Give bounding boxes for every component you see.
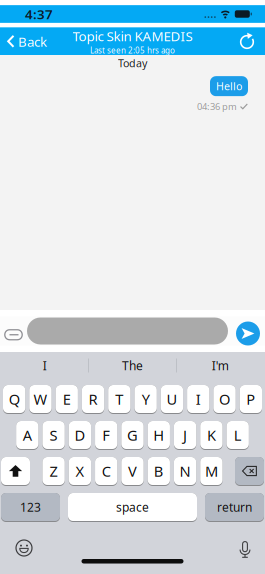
staticText: Q [9, 389, 20, 409]
staticText: H [153, 425, 164, 445]
button[interactable]: Send [236, 316, 265, 345]
button[interactable]: X [69, 457, 91, 486]
staticText: T [115, 389, 123, 409]
button[interactable]: Message field [23, 317, 228, 344]
staticText: X [75, 461, 84, 481]
staticText: space [116, 499, 149, 515]
staticText: return [217, 499, 252, 515]
button[interactable]: A [16, 421, 38, 450]
staticText: O [219, 389, 230, 409]
button[interactable]: L [227, 421, 249, 450]
button[interactable]: I [187, 385, 209, 414]
staticText: Hello [216, 79, 242, 93]
button[interactable]: O [213, 385, 236, 414]
button[interactable]: Q [3, 385, 25, 414]
staticText: E [63, 389, 71, 409]
staticText: W [33, 389, 47, 409]
button[interactable]: Dictation [238, 536, 265, 560]
button[interactable]: W [29, 385, 52, 414]
staticText: 04:36 pm [197, 100, 237, 113]
staticText: P [246, 389, 255, 409]
button[interactable]: Delete [235, 457, 264, 486]
staticText: F [102, 425, 110, 445]
staticText: I [196, 389, 201, 409]
button[interactable]: M [200, 457, 222, 486]
staticText: Topic Skin KAMEDIS [72, 27, 192, 45]
staticText: C [102, 461, 111, 481]
button[interactable]: The [89, 352, 176, 379]
button[interactable]: V [121, 457, 144, 486]
button[interactable]: D [69, 421, 91, 450]
button[interactable]: B [148, 457, 170, 486]
button[interactable]: C [95, 457, 117, 486]
button[interactable]: K [200, 421, 222, 450]
button[interactable]: R [82, 385, 104, 414]
staticText: M [205, 461, 218, 481]
button[interactable]: N [174, 457, 196, 486]
staticText: D [74, 425, 85, 445]
staticText: L [234, 425, 242, 445]
staticText: K [207, 425, 216, 445]
button[interactable]: P [240, 385, 262, 414]
button[interactable]: Return [205, 493, 264, 522]
staticText: 123 [20, 499, 41, 515]
staticText: A [23, 425, 32, 445]
button[interactable]: H [148, 421, 170, 450]
button[interactable]: Y [134, 385, 157, 414]
staticText: Z [50, 461, 58, 481]
button[interactable]: I [1, 352, 88, 379]
button[interactable]: T [108, 385, 130, 414]
staticText: The [122, 357, 143, 373]
button[interactable]: Emoji [0, 539, 33, 557]
button[interactable]: space [68, 493, 197, 522]
staticText: J [183, 425, 187, 445]
button[interactable]: F [95, 421, 117, 450]
button[interactable]: Attach file [0, 321, 23, 341]
staticText: I [43, 357, 47, 373]
staticText: Back [18, 33, 47, 50]
button[interactable]: U [161, 385, 183, 414]
button[interactable]: Numbers [1, 493, 60, 522]
staticText: 4:37 [25, 5, 53, 23]
button[interactable]: S [42, 421, 65, 450]
staticText: N [180, 461, 191, 481]
button[interactable]: Refresh [238, 32, 265, 50]
staticText: G [127, 425, 138, 445]
staticText: Today [118, 56, 147, 70]
staticText: Last seen 2:05 hrs ago [90, 45, 175, 56]
button[interactable]: Shift [1, 457, 30, 486]
button[interactable]: E [56, 385, 78, 414]
staticText: Y [142, 389, 150, 409]
staticText: S [50, 425, 58, 445]
button[interactable]: G [121, 421, 144, 450]
staticText: I'm [212, 357, 229, 373]
button[interactable]: Z [42, 457, 65, 486]
staticText: U [166, 389, 177, 409]
button[interactable]: J [174, 421, 196, 450]
button[interactable]: Back [0, 33, 47, 50]
staticText: B [154, 461, 164, 481]
staticText: V [128, 461, 137, 481]
button[interactable]: I'm [177, 352, 264, 379]
staticText: R [88, 389, 97, 409]
